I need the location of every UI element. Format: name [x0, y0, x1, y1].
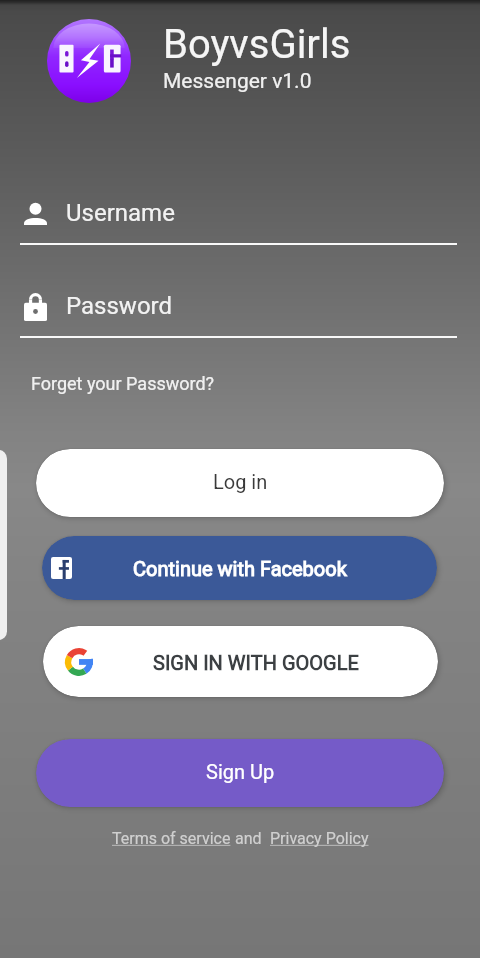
other: Facebook	[51, 557, 72, 579]
button[interactable]: Log in	[36, 449, 444, 517]
staticText: and	[231, 829, 270, 848]
other: Google	[65, 648, 93, 676]
staticText: Password	[66, 292, 173, 320]
button[interactable]: Terms of service	[112, 829, 231, 848]
button[interactable]: Forget your Password?	[31, 373, 215, 394]
staticText: SIGN IN WITH GOOGLE	[153, 651, 359, 674]
staticText: Privacy Policy	[270, 829, 369, 848]
staticText: Log in	[213, 470, 268, 493]
staticText: Sign Up	[206, 760, 275, 783]
staticText: Username	[66, 199, 175, 227]
staticText: Terms of service	[112, 829, 231, 848]
staticText: Messenger v1.0	[163, 69, 312, 94]
button[interactable]: Sign Up	[36, 739, 444, 807]
staticText: Continue with Facebook	[133, 557, 347, 580]
button[interactable]: Facebook	[42, 536, 437, 600]
button[interactable]: Privacy Policy	[270, 829, 369, 848]
staticText: BoyvsGirls	[163, 21, 351, 68]
button[interactable]: Google	[43, 626, 438, 697]
staticText: Forget your Password?	[31, 373, 215, 394]
